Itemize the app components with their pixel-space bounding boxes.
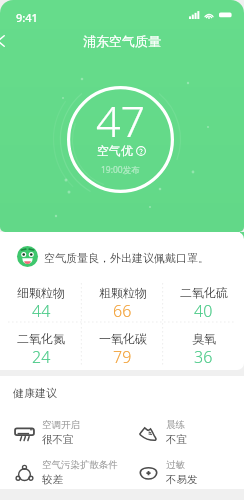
staticText: 二氧化氮: [17, 331, 65, 346]
staticText: 24: [32, 346, 51, 368]
staticText: 较差: [42, 473, 63, 486]
staticText: 过敏: [166, 459, 185, 471]
staticText: 不易发: [166, 473, 198, 486]
staticText: 粗颗粒物: [99, 285, 147, 300]
staticText: 47: [96, 91, 146, 150]
staticText: 40: [194, 300, 213, 322]
staticText: 19:00发布: [101, 164, 140, 176]
staticText: 二氧化硫: [180, 285, 228, 300]
staticText: 细颗粒物: [17, 285, 65, 300]
staticText: 66: [113, 300, 132, 322]
staticText: 健康建议: [13, 386, 57, 400]
staticText: 晨练: [166, 419, 185, 431]
staticText: 空气质量良，外出建议佩戴口罩。: [44, 251, 209, 265]
staticText: 臭氧: [192, 331, 216, 346]
staticText: 空气污染扩散条件: [42, 459, 118, 471]
staticText: 44: [32, 300, 51, 322]
staticText: 79: [113, 346, 132, 368]
button[interactable]: 空调开启: [14, 417, 134, 447]
button[interactable]: 晨练: [138, 417, 238, 447]
button[interactable]: 空气污染扩散条件: [14, 457, 134, 487]
staticText: 空气优: [97, 143, 133, 158]
button[interactable]: 过敏: [138, 457, 238, 487]
staticText: 36: [194, 346, 213, 368]
staticText: 很不宜: [42, 433, 74, 446]
staticText: 一氧化碳: [99, 331, 147, 346]
staticText: 浦东空气质量: [83, 33, 161, 49]
staticText: 不宜: [166, 433, 187, 446]
staticText: 空调开启: [42, 419, 80, 431]
button[interactable]: Back: [0, 27, 14, 55]
staticText: 9:41: [16, 10, 38, 25]
